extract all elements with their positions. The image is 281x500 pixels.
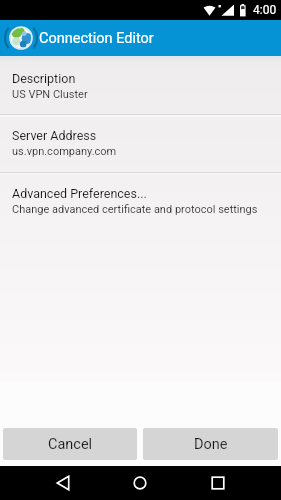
staticText: Cancel: [48, 436, 93, 453]
button[interactable]: Back: [35, 466, 91, 500]
staticText: US VPN Cluster: [12, 88, 88, 101]
button[interactable]: Server Address: [0, 117, 281, 172]
staticText: Done: [194, 436, 228, 453]
staticText: 4:00: [253, 3, 277, 17]
staticText: us.vpn.company.com: [12, 145, 117, 158]
staticText: Advanced Preferences...: [12, 186, 147, 201]
button[interactable]: Description: [0, 56, 281, 114]
other: Connection icon: [5, 22, 37, 54]
staticText: Change advanced certificate and protocol…: [12, 203, 258, 216]
button[interactable]: Done: [143, 428, 278, 460]
button[interactable]: Recent apps: [190, 466, 246, 500]
staticText: Server Address: [12, 128, 97, 143]
button[interactable]: Home: [112, 466, 168, 500]
staticText: Connection Editor: [39, 30, 154, 47]
staticText: Description: [12, 71, 76, 86]
button[interactable]: Cancel: [3, 428, 137, 460]
button[interactable]: Advanced Preferences...: [0, 175, 281, 233]
